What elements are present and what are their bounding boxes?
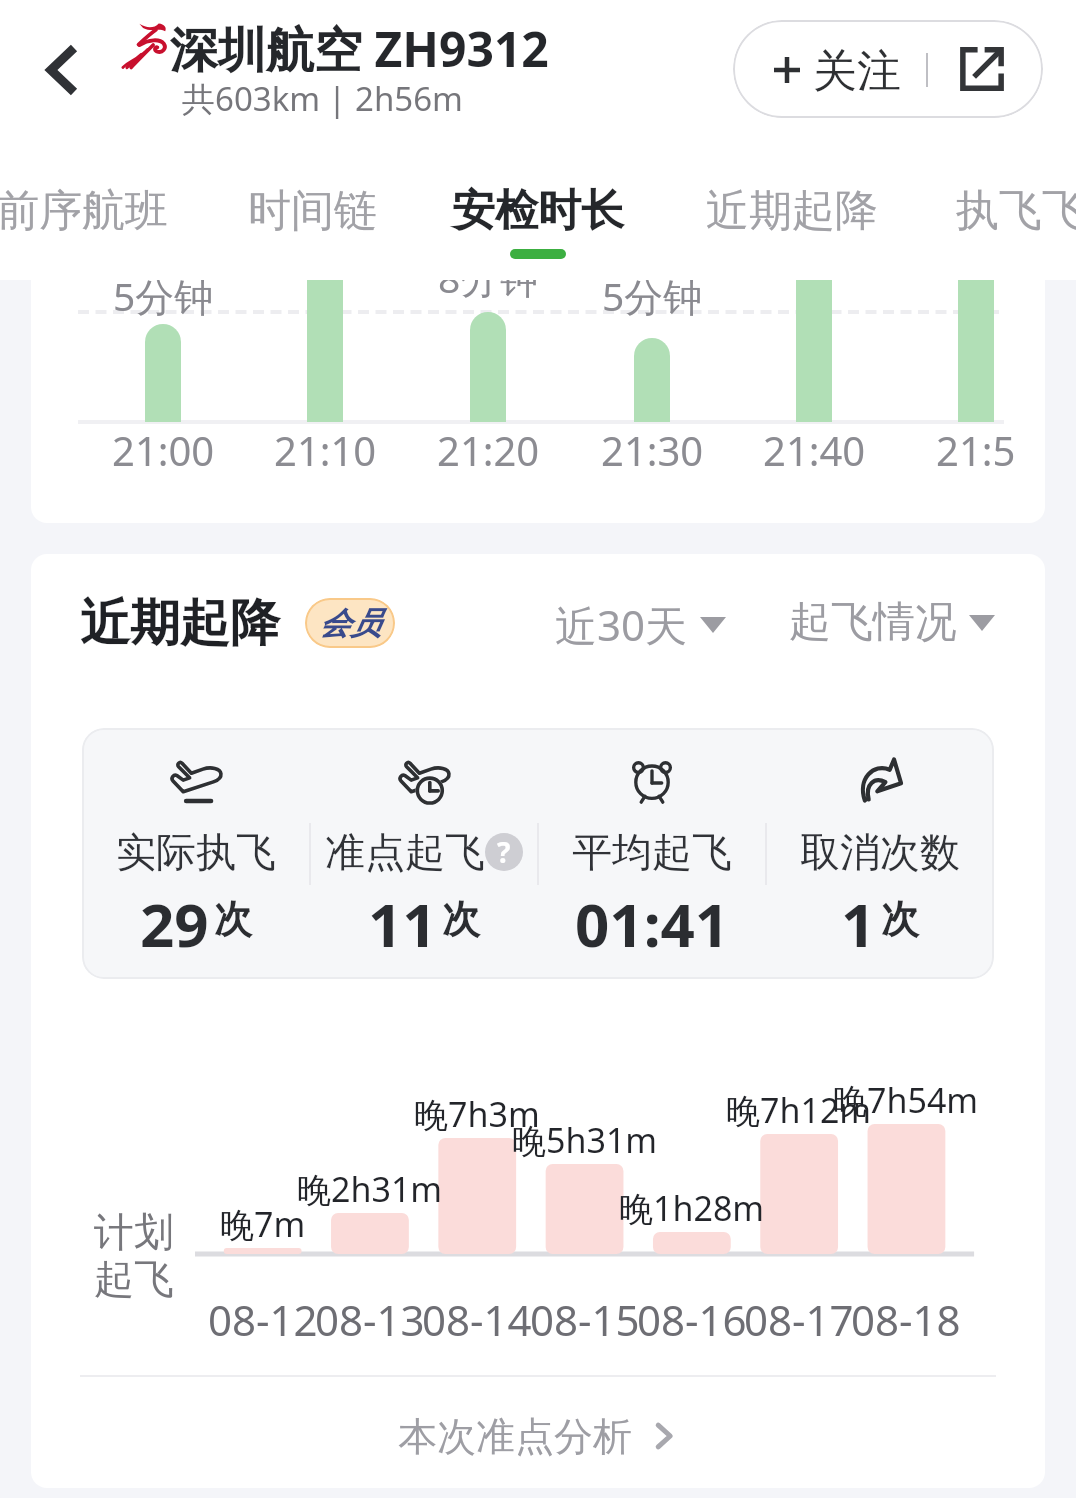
staticText: 08-15 [530,1291,640,1348]
staticText: 深圳航空 ZH9312 [170,16,549,82]
staticText: 近期起降 [706,184,878,238]
staticText: 次 [214,895,252,943]
button[interactable]: 近期起降 [662,150,922,280]
button[interactable]: 安检时长 [408,150,668,280]
staticText: 29 [140,883,209,965]
button[interactable]: 平均起飞 [538,728,766,979]
staticText: 本次准点分析 [398,1412,632,1461]
staticText: 关注 [813,44,901,99]
staticText: 会员 [319,604,381,643]
staticText: 近期起降 [80,592,280,655]
staticText: 安检时长 [452,184,624,238]
staticText: 前序航班 [0,184,168,238]
staticText: 平均起飞 [572,827,732,877]
staticText: 21:40 [763,423,866,477]
staticText: 晚2h31m [297,1166,443,1212]
button[interactable]: 准点起飞 [310,728,538,979]
staticText: 01:41 [575,883,730,965]
staticText: 5分钟 [602,280,703,322]
staticText: 08-14 [422,1291,532,1348]
staticText: 21:5 [936,423,1016,477]
staticText: 次 [881,895,919,943]
button[interactable]: 前序航班 [0,150,212,280]
button[interactable]: 取消次数 [766,728,994,979]
button[interactable]: 关注 [733,20,1043,118]
staticText: 取消次数 [800,827,960,877]
button[interactable]: 本次准点分析 [31,1380,1045,1488]
staticText: 21:30 [601,423,704,477]
staticText: 计划 [94,1207,174,1257]
staticText: 08-17 [744,1291,854,1348]
staticText: 5分钟 [113,280,214,322]
staticText: 8分钟 [438,280,539,304]
staticText: 08-12 [208,1291,318,1348]
staticText: 21:00 [112,423,215,477]
staticText: 08-13 [315,1291,425,1348]
staticText: 晚5h31m [512,1117,658,1163]
staticText: 11 [368,883,437,965]
staticText: 共603km [182,76,321,121]
staticText: 时间链 [248,184,377,238]
staticText: ? [497,833,511,871]
button[interactable]: 时间链 [182,150,442,280]
staticText: 21:10 [274,423,377,477]
button[interactable]: 执飞飞 [890,150,1076,280]
staticText: 08-16 [637,1291,747,1348]
staticText: 执飞飞 [956,184,1076,238]
button[interactable]: 实际执飞 [82,728,310,979]
staticText: 准点起飞 [325,827,485,877]
staticText: 晚7h12m [726,1087,872,1133]
staticText: 晚7h3m [414,1091,540,1137]
staticText: | [328,76,347,121]
staticText: 21:20 [437,423,540,477]
staticText: 实际执飞 [116,827,276,877]
button[interactable]: Open in new window [960,47,1004,91]
staticText: 起飞 [94,1254,174,1304]
staticText: 晚1h28m [619,1185,765,1231]
staticText: 晚7h54m [833,1077,979,1123]
staticText: 近30天 [555,596,688,653]
staticText: 1 [841,883,876,965]
button[interactable]: 近30天 [555,596,726,653]
button[interactable]: 起飞情况 [789,596,995,649]
staticText: 2h56m [355,76,463,121]
button[interactable]: Back [22,30,102,110]
staticText: 次 [442,895,480,943]
staticText: 08-18 [851,1291,961,1348]
staticText: 起飞情况 [789,596,957,649]
staticText: 晚7m [220,1201,306,1247]
